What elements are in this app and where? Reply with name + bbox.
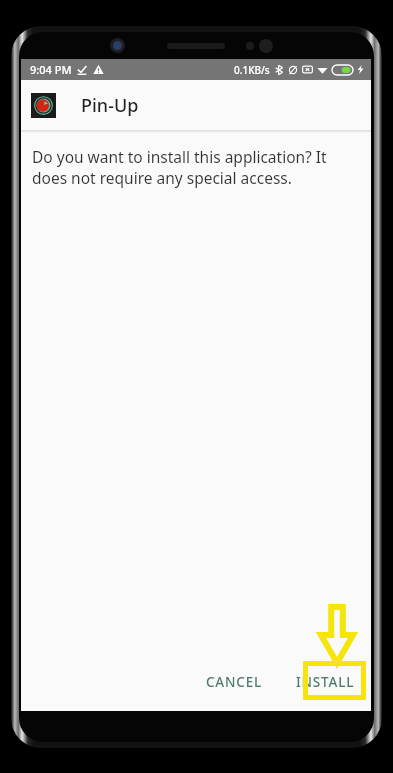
other: Highlight on Install button — [303, 661, 366, 700]
other: Arrow pointing to Install button — [317, 607, 357, 663]
staticText: Do you want to install this application?… — [32, 146, 347, 189]
staticText: Pin-Up — [81, 93, 139, 118]
button[interactable]: CANCEL — [194, 665, 274, 699]
button[interactable]: INSTALL — [286, 665, 365, 699]
staticText: CANCEL — [206, 673, 262, 691]
staticText: 0.1KB/s — [234, 63, 270, 77]
staticText: 9:04 PM — [30, 62, 72, 77]
staticText: INSTALL — [296, 673, 355, 691]
